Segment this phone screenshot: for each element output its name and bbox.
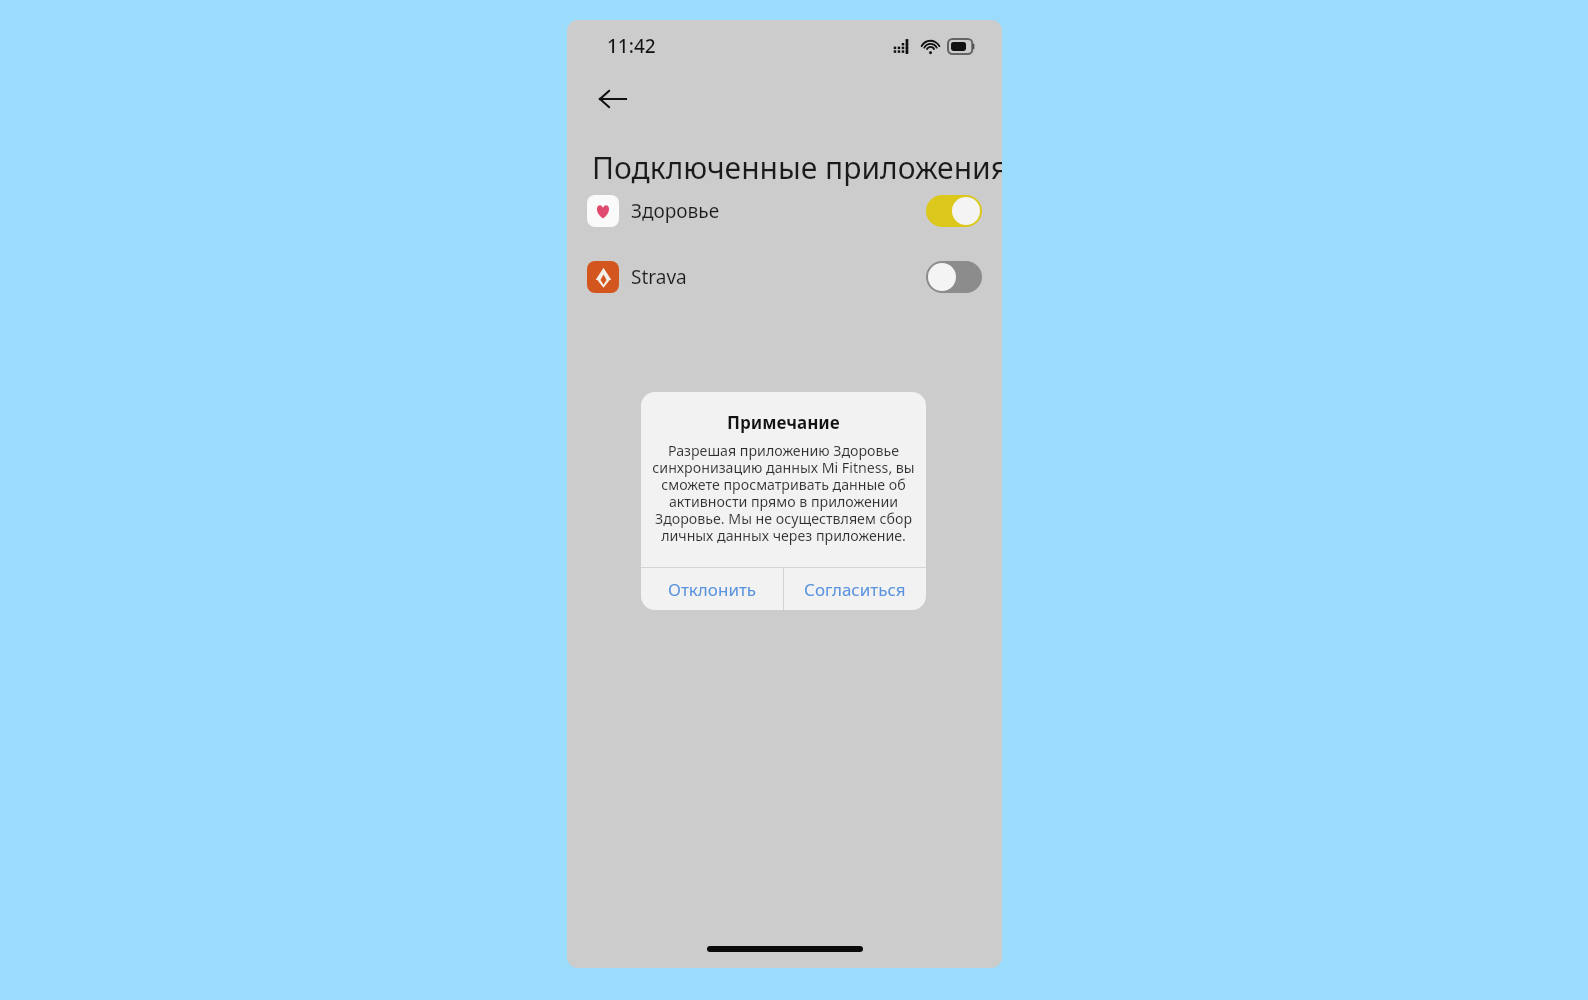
button[interactable]: Strava bbox=[579, 249, 990, 305]
staticText: Согласиться bbox=[804, 578, 906, 601]
staticText: Отклонить bbox=[668, 578, 757, 601]
button[interactable]: Согласиться bbox=[784, 568, 926, 610]
staticText: Здоровье bbox=[631, 198, 720, 224]
button[interactable]: Toggle off bbox=[926, 261, 982, 293]
staticText: Подключенные приложения bbox=[592, 147, 1002, 188]
button[interactable]: Back bbox=[589, 76, 635, 122]
button[interactable]: Здоровье bbox=[579, 183, 990, 239]
button[interactable]: Toggle on bbox=[926, 195, 982, 227]
button[interactable]: Отклонить bbox=[641, 568, 783, 610]
staticText: Разрешая приложению Здоровье синхронизац… bbox=[652, 441, 915, 546]
staticText: Примечание bbox=[727, 411, 840, 434]
staticText: 11:42 bbox=[607, 33, 656, 59]
staticText: Strava bbox=[631, 264, 687, 290]
